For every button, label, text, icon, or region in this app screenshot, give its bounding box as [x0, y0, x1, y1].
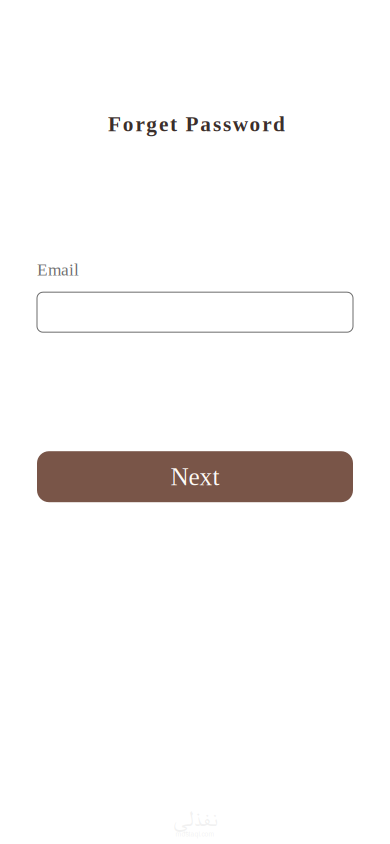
staticText: mostaql.com	[175, 831, 214, 838]
staticText: نفذلي	[172, 808, 217, 831]
button[interactable]: Email	[37, 292, 353, 332]
button[interactable]: Next	[37, 451, 353, 502]
staticText: Next	[170, 463, 219, 491]
staticText: Email	[37, 260, 79, 279]
staticText: Forget Password	[108, 112, 285, 136]
